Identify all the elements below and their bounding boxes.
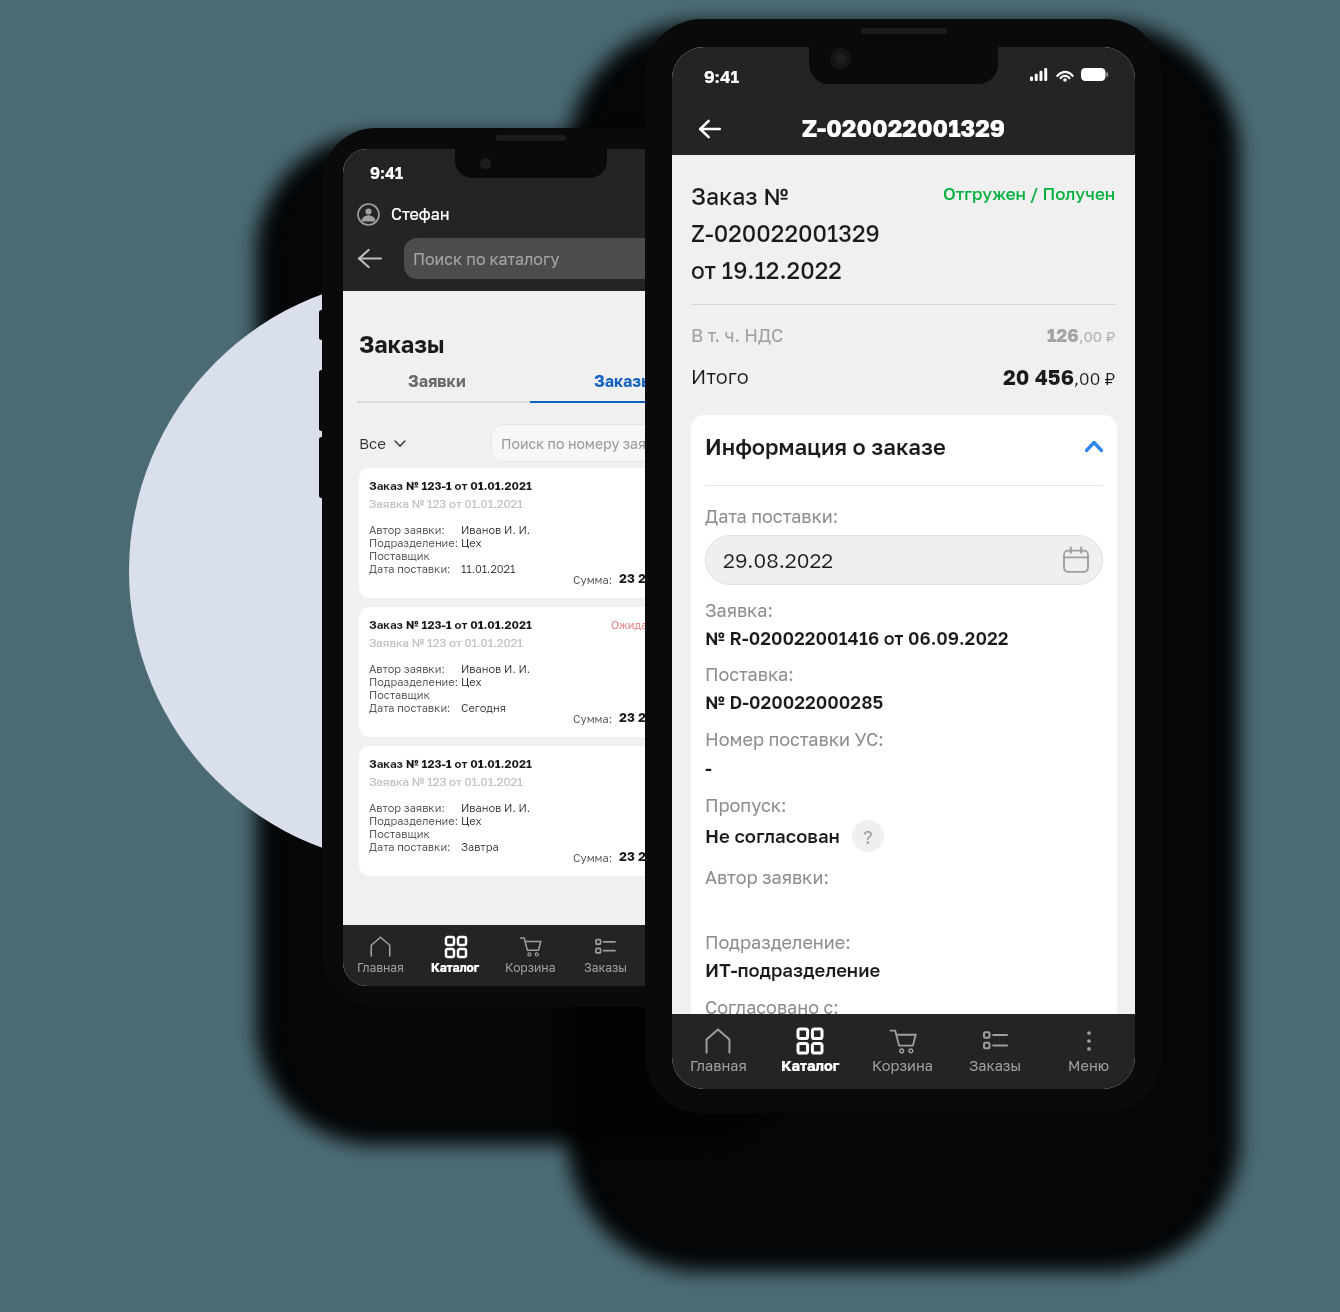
staticText: Не согласован	[705, 825, 840, 847]
staticText: Заказы	[584, 960, 628, 974]
staticText: Иванов И. И.	[461, 801, 531, 814]
button[interactable]: Корзина	[856, 1024, 949, 1089]
staticText: Информация о заказе	[705, 433, 1085, 459]
staticText: Согласовано с:	[705, 996, 839, 1014]
button[interactable]: Меню	[643, 933, 718, 986]
staticText: Заявка № 123 от 01.01.2021	[369, 636, 523, 650]
staticText: № R-020022001416 от 06.09.2022	[705, 627, 1009, 649]
staticText: Ожидает поставки	[611, 618, 712, 631]
staticText: Поставщик	[369, 688, 430, 701]
button[interactable]: 29.08.2022	[705, 535, 1103, 585]
staticText: Поставщик	[369, 827, 430, 840]
staticText: Подразделение:	[705, 931, 851, 953]
staticText: Заказы	[594, 371, 654, 390]
staticText: 11.01.2021	[461, 562, 516, 575]
staticText: Заказы	[359, 330, 445, 358]
staticText: Подразделение:	[369, 675, 458, 688]
button[interactable]: Главная	[343, 933, 418, 986]
staticText: Заявки	[408, 371, 466, 390]
staticText: Номер поставки УС:	[705, 728, 884, 750]
staticText: Дата поставки:	[369, 701, 451, 714]
staticText: ,00 ₽	[1079, 327, 1116, 345]
staticText: Иванов И. И.	[461, 523, 531, 536]
staticText: Z-020022001329	[691, 219, 880, 247]
staticText: Цех	[461, 536, 482, 549]
staticText: Дата поставки:	[369, 840, 451, 853]
button[interactable]: Меню	[1042, 1024, 1135, 1089]
button[interactable]: Back	[684, 103, 736, 155]
staticText: Автор заявки:	[705, 866, 829, 888]
staticText: Сумма:	[573, 712, 612, 725]
staticText: Сегодня	[461, 701, 506, 714]
staticText: Дата поставки:	[705, 505, 839, 527]
staticText: Иванов И. И.	[461, 662, 531, 675]
staticText: Дата поставки:	[369, 562, 451, 575]
staticText: 9:41	[370, 163, 404, 182]
staticText: 29.08.2022	[723, 548, 834, 573]
staticText: Поиск по номеру заявки	[501, 435, 671, 452]
staticText: Сумма:	[573, 573, 612, 586]
staticText: Поставлен	[654, 757, 712, 770]
staticText: Корзина	[505, 960, 556, 974]
staticText: от 19.12.2022	[691, 256, 842, 284]
staticText: Заказы	[969, 1057, 1022, 1074]
staticText: ИТ-подразделение	[705, 959, 881, 981]
staticText: 23 2	[619, 570, 647, 586]
staticText: Заявка № 123 от 01.01.2021	[369, 775, 523, 789]
staticText: 20 456	[1003, 364, 1074, 389]
staticText: Подразделение:	[369, 814, 458, 827]
staticText: Заявка:	[705, 599, 773, 621]
staticText: Заявка № 123 от 01.01.2021	[369, 497, 523, 511]
staticText: Заказ №	[691, 182, 789, 210]
button[interactable]: Заказы	[568, 933, 643, 986]
staticText: Заказ № 123-1 от 01.01.2021	[369, 757, 532, 771]
staticText: 23 2	[619, 709, 647, 725]
button[interactable]: Help	[852, 820, 884, 852]
staticText: Отгружен / Получен	[943, 183, 1116, 203]
staticText: 126	[1047, 324, 1079, 346]
staticText: -	[705, 757, 712, 779]
staticText: Отклонен	[659, 479, 712, 492]
staticText: ,00 ₽	[1074, 368, 1116, 388]
staticText: Поиск по каталогу	[413, 249, 560, 268]
staticText: В т. ч. НДС	[691, 324, 1047, 346]
staticText: Главная	[357, 960, 404, 974]
button[interactable]: Заказ № 123-1 от 01.01.2021	[359, 607, 718, 737]
staticText: 23 2	[619, 848, 647, 864]
staticText: Заказ № 123-1 от 01.01.2021	[369, 618, 532, 632]
button[interactable]: Каталог	[418, 933, 493, 986]
staticText: № D-020022000285	[705, 691, 884, 713]
staticText: Каталог	[431, 960, 480, 974]
staticText: Цех	[461, 814, 482, 827]
staticText: Подразделение:	[369, 536, 458, 549]
button[interactable]: Корзина	[493, 933, 568, 986]
button[interactable]: Заказ № 123-1 от 01.01.2021	[359, 746, 718, 876]
staticText: Поставщик	[369, 549, 430, 562]
staticText: ?	[863, 825, 873, 848]
staticText: Автор заявки:	[369, 801, 445, 814]
button[interactable]: Заказ № 123-1 от 01.01.2021	[359, 468, 718, 598]
staticText: Меню	[1068, 1057, 1109, 1074]
button[interactable]: Главная	[672, 1024, 764, 1089]
staticText: Меню	[664, 960, 698, 974]
staticText: Каталог	[781, 1057, 840, 1074]
staticText: Цех	[461, 675, 482, 688]
staticText: Поставка:	[705, 663, 794, 685]
button[interactable]: Каталог	[764, 1024, 856, 1089]
button[interactable]: Заказы	[949, 1024, 1042, 1089]
button[interactable]: Информация о заказе	[705, 415, 1103, 477]
staticText: Корзина	[872, 1057, 933, 1074]
staticText: Заказ № 123-1 от 01.01.2021	[369, 479, 532, 493]
staticText: Завтра	[461, 840, 499, 853]
staticText: Сумма:	[573, 851, 612, 864]
staticText: Пропуск:	[705, 794, 787, 816]
staticText: Итого	[691, 364, 1003, 388]
staticText: Автор заявки:	[369, 662, 445, 675]
staticText: Главная	[690, 1057, 747, 1074]
staticText: 9:41	[704, 66, 740, 86]
staticText: Все	[359, 434, 386, 452]
staticText: Автор заявки:	[369, 523, 445, 536]
